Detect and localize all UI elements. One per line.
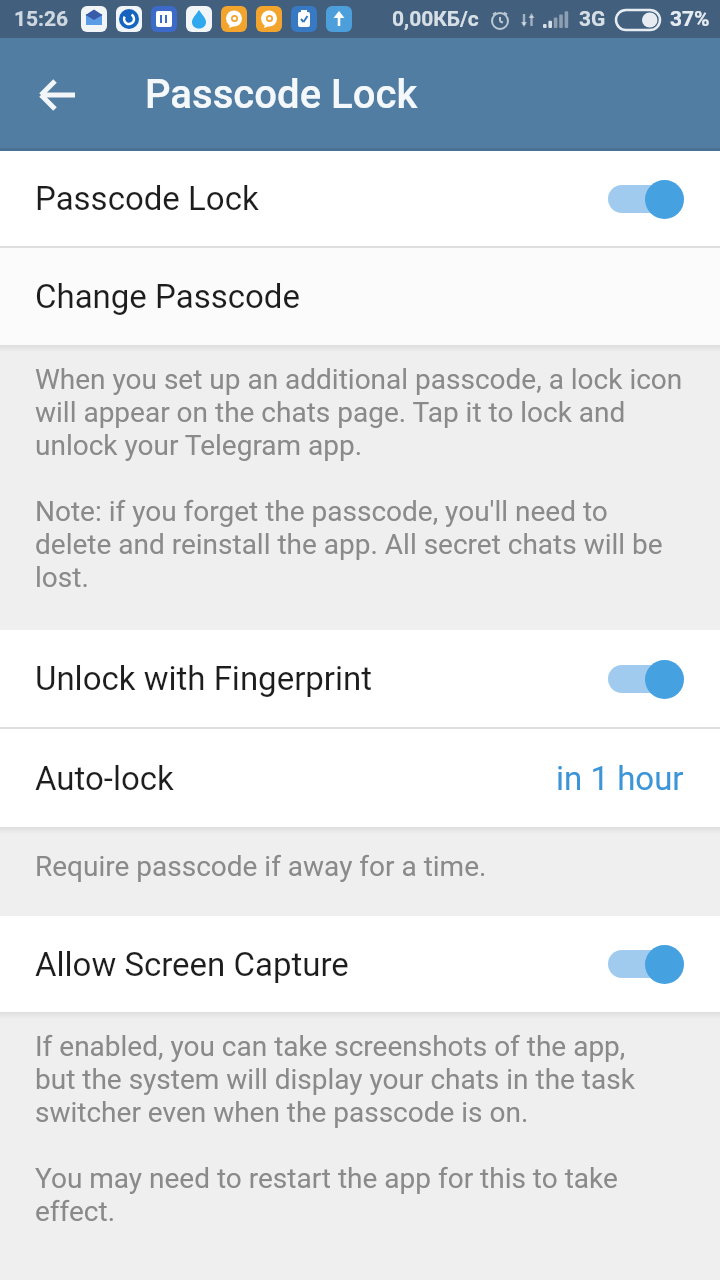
staticText: 0,00КБ/с <box>392 7 479 32</box>
button[interactable]: Passcode Lock <box>0 151 720 246</box>
button[interactable]: Allow Screen Capture <box>0 916 720 1012</box>
staticText: in 1 hour <box>556 759 684 798</box>
staticText: If enabled, you can take screenshots of … <box>35 1030 635 1228</box>
staticText: Require passcode if away for a time. <box>35 850 487 883</box>
button[interactable]: Change Passcode <box>0 248 720 345</box>
staticText: Passcode Lock <box>145 71 418 118</box>
button[interactable]: Auto-lock <box>0 729 720 827</box>
staticText: 37% <box>670 7 710 32</box>
button[interactable]: Unlock with Fingerprint <box>0 630 720 727</box>
staticText: Allow Screen Capture <box>35 945 349 984</box>
staticText: Auto-lock <box>35 759 174 798</box>
staticText: 3G <box>579 7 606 32</box>
button[interactable] <box>26 63 90 127</box>
staticText: Change Passcode <box>35 277 300 316</box>
staticText: Unlock with Fingerprint <box>35 659 373 698</box>
staticText: 15:26 <box>14 7 69 32</box>
staticText: When you set up an additional passcode, … <box>35 363 683 594</box>
staticText: Passcode Lock <box>35 179 259 218</box>
